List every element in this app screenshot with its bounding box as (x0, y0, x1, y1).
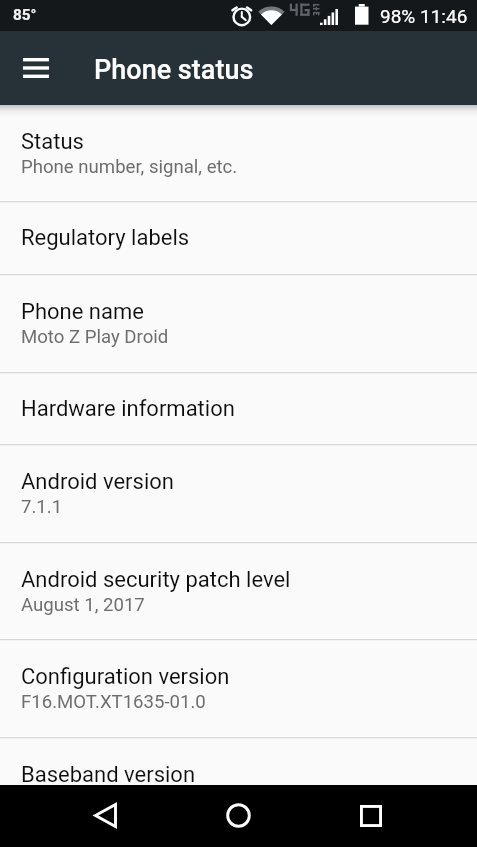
staticText: August 1, 2017 (21, 594, 145, 616)
button[interactable]: Open navigation menu (10, 42, 62, 94)
staticText: Configuration version (21, 664, 230, 690)
staticText: Status (21, 129, 84, 155)
button[interactable]: Recent apps (339, 788, 403, 844)
button[interactable]: Configuration version (0, 640, 477, 737)
button[interactable]: Back (73, 787, 137, 843)
staticText: Hardware information (21, 396, 235, 422)
staticText: 85° (13, 6, 37, 24)
button[interactable]: Android security patch level (0, 543, 477, 639)
staticText: 7.1.1 (21, 496, 63, 518)
staticText: Phone status (94, 54, 254, 86)
staticText: Phone name (21, 299, 144, 325)
staticText: Baseband version (21, 762, 196, 785)
staticText: Regulatory labels (21, 225, 190, 251)
button[interactable]: Baseband version (0, 738, 477, 785)
staticText: Phone number, signal, etc. (21, 156, 238, 178)
staticText: F16.MOT.XT1635-01.0 (21, 691, 206, 713)
button[interactable]: Regulatory labels (0, 202, 477, 274)
button[interactable]: Status (0, 105, 477, 201)
button[interactable]: Hardware information (0, 373, 477, 444)
staticText: Moto Z Play Droid (21, 326, 169, 348)
staticText: Android security patch level (21, 567, 291, 593)
staticText: Android version (21, 469, 174, 495)
button[interactable]: Phone name (0, 275, 477, 372)
button[interactable]: Home (206, 787, 270, 843)
staticText: 11:46 (420, 5, 468, 27)
button[interactable]: Android version (0, 445, 477, 542)
staticText: 98% (380, 5, 416, 27)
